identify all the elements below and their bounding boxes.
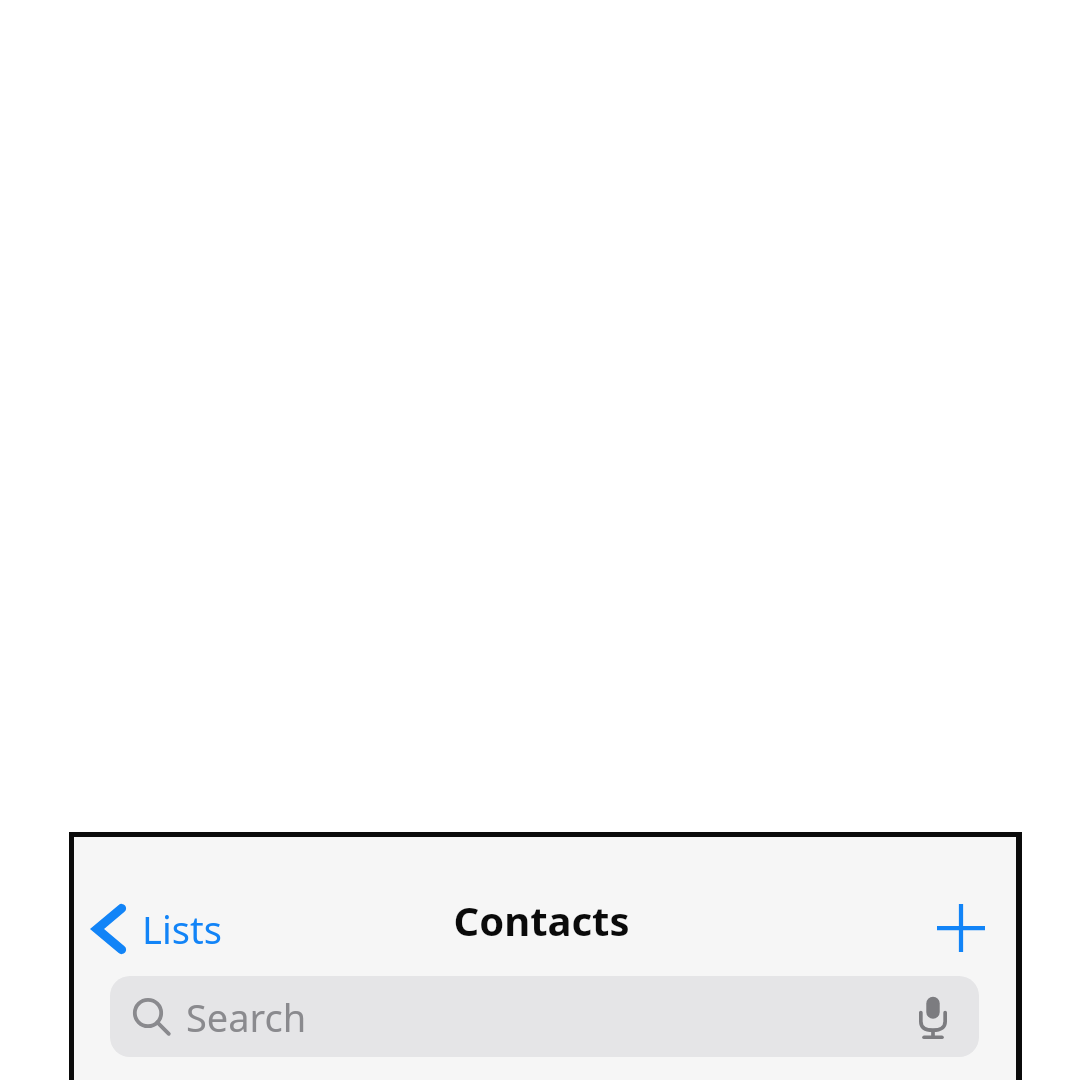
button[interactable]: Add contact	[930, 897, 992, 959]
button[interactable]: Lists	[88, 897, 228, 961]
button[interactable]: Search	[110, 976, 979, 1057]
staticText: Search	[186, 991, 307, 1043]
button[interactable]: Voice search	[909, 993, 957, 1041]
staticText: Lists	[142, 903, 222, 955]
staticText: Contacts	[453, 893, 630, 947]
